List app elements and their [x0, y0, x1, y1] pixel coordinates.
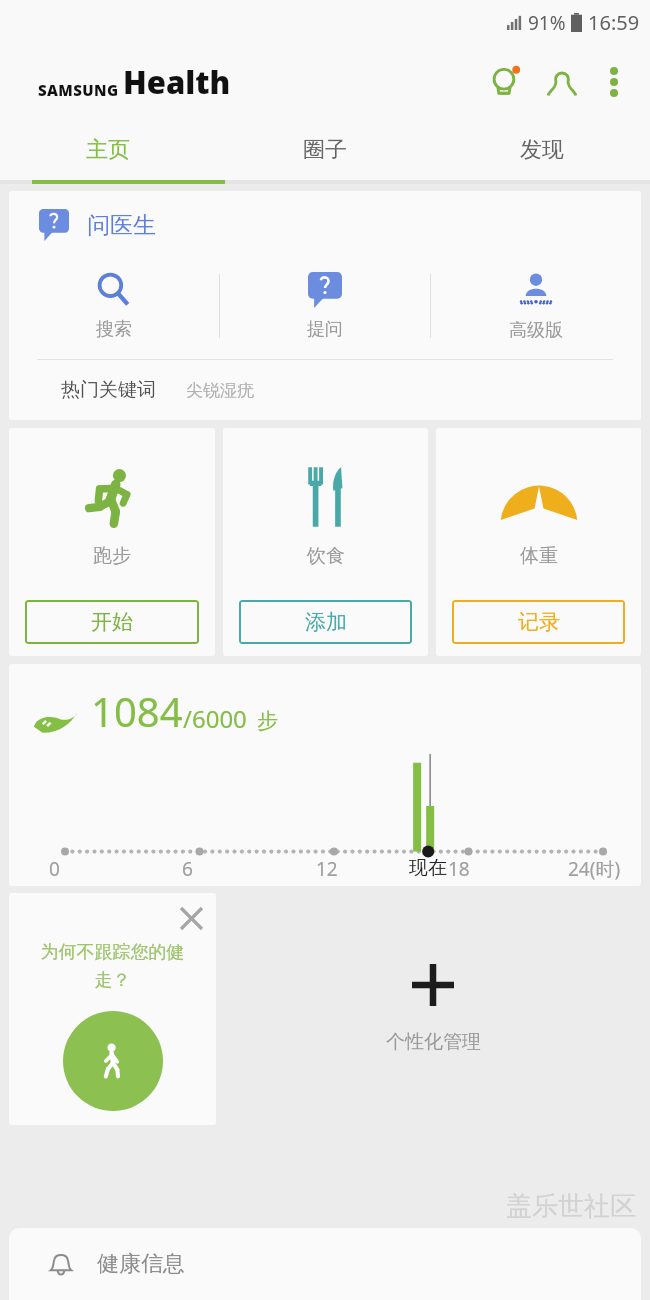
button[interactable]: More options	[590, 58, 638, 106]
staticText: 高级版	[509, 319, 563, 342]
button[interactable]: 饮食	[223, 428, 428, 656]
button[interactable]: 圈子	[216, 120, 433, 180]
staticText: 现在	[409, 856, 447, 880]
staticText: 盖乐世社区	[506, 1190, 636, 1223]
staticText: 个性化管理	[386, 1030, 481, 1054]
staticText: /6000	[183, 702, 247, 735]
staticText: 主页	[86, 136, 130, 164]
staticText: 开始	[91, 609, 133, 635]
staticText: 饮食	[307, 544, 345, 568]
staticText: 体重	[520, 544, 558, 568]
button[interactable]: 主页	[0, 120, 216, 180]
button[interactable]: 体重	[436, 428, 641, 656]
button[interactable]: 高级版	[431, 259, 641, 353]
staticText: 记录	[518, 609, 560, 635]
button[interactable]: 跑步	[9, 428, 215, 656]
staticText: 尖锐湿疣	[186, 380, 254, 401]
button[interactable]: 健康信息	[9, 1228, 641, 1300]
staticText: 提问	[307, 318, 343, 341]
button[interactable]: Close	[9, 893, 216, 1125]
staticText: 发现	[520, 136, 564, 164]
button[interactable]: Close	[166, 893, 216, 943]
staticText: 6	[182, 856, 193, 882]
staticText: SAMSUNG	[38, 80, 119, 100]
staticText: 跑步	[93, 544, 131, 568]
staticText: 0	[49, 856, 60, 882]
staticText: 添加	[305, 609, 347, 635]
button[interactable]: 个性化管理	[216, 893, 650, 1125]
staticText: 健康信息	[97, 1250, 185, 1278]
staticText: 18	[448, 856, 470, 882]
staticText: 圈子	[303, 136, 347, 164]
button[interactable]: 提问	[220, 259, 430, 353]
staticText: 搜索	[96, 318, 132, 341]
staticText: 12	[316, 856, 338, 882]
button[interactable]: Profile	[534, 54, 590, 110]
button[interactable]: Tips	[478, 54, 534, 110]
button[interactable]: 发现	[433, 120, 650, 180]
button[interactable]: 1084	[9, 664, 641, 886]
button[interactable]: 搜索	[9, 259, 219, 353]
staticText: 91%	[528, 10, 566, 36]
button[interactable]: 问医生	[9, 191, 641, 420]
staticText: 24(时)	[568, 856, 621, 882]
staticText: 热门关键词	[61, 378, 156, 402]
button[interactable]: 添加	[239, 600, 412, 644]
staticText: 为何不跟踪您的健走？	[35, 941, 190, 991]
staticText: 问医生	[87, 211, 156, 240]
staticText: 1084	[91, 684, 183, 738]
button[interactable]: 开始	[25, 600, 199, 644]
staticText: Health	[123, 61, 231, 103]
staticText: 16:59	[588, 9, 640, 36]
staticText: 步	[257, 708, 278, 734]
button[interactable]: 记录	[452, 600, 625, 644]
